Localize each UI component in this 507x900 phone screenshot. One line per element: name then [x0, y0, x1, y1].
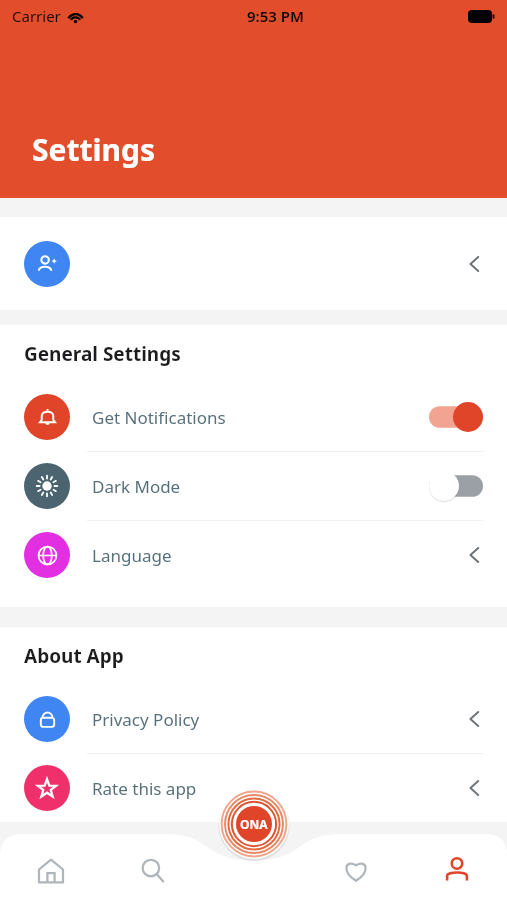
- staticText: Rate this app: [92, 777, 197, 800]
- staticText: Get Notifications: [92, 406, 226, 429]
- other: Open: [466, 777, 483, 799]
- button[interactable]: Dark Mode: [0, 452, 507, 520]
- staticText: Carrier: [12, 6, 61, 26]
- button[interactable]: Get Notifications: [0, 383, 507, 451]
- button[interactable]: Open: [0, 217, 507, 310]
- staticText: Dark Mode: [92, 475, 181, 498]
- staticText: About App: [24, 643, 124, 669]
- button[interactable]: Profile: [406, 834, 507, 900]
- staticText: ONA: [240, 816, 268, 832]
- staticText: Settings: [32, 129, 155, 170]
- button[interactable]: Home: [0, 834, 102, 900]
- staticText: Privacy Policy: [92, 708, 200, 731]
- button[interactable]: Privacy Policy: [0, 685, 507, 753]
- staticText: 9:53 PM: [247, 6, 304, 26]
- button[interactable]: Favorites: [305, 834, 406, 900]
- other: Open: [466, 708, 483, 730]
- button[interactable]: On: [429, 402, 483, 432]
- button[interactable]: ONA: [218, 788, 290, 860]
- button[interactable]: Language: [0, 521, 507, 589]
- staticText: General Settings: [24, 341, 181, 367]
- staticText: Language: [92, 544, 172, 567]
- button[interactable]: Off: [429, 471, 483, 501]
- button[interactable]: Rate this app: [0, 754, 507, 822]
- other: Open: [466, 253, 483, 275]
- button[interactable]: Search: [102, 834, 204, 900]
- other: Open: [466, 544, 483, 566]
